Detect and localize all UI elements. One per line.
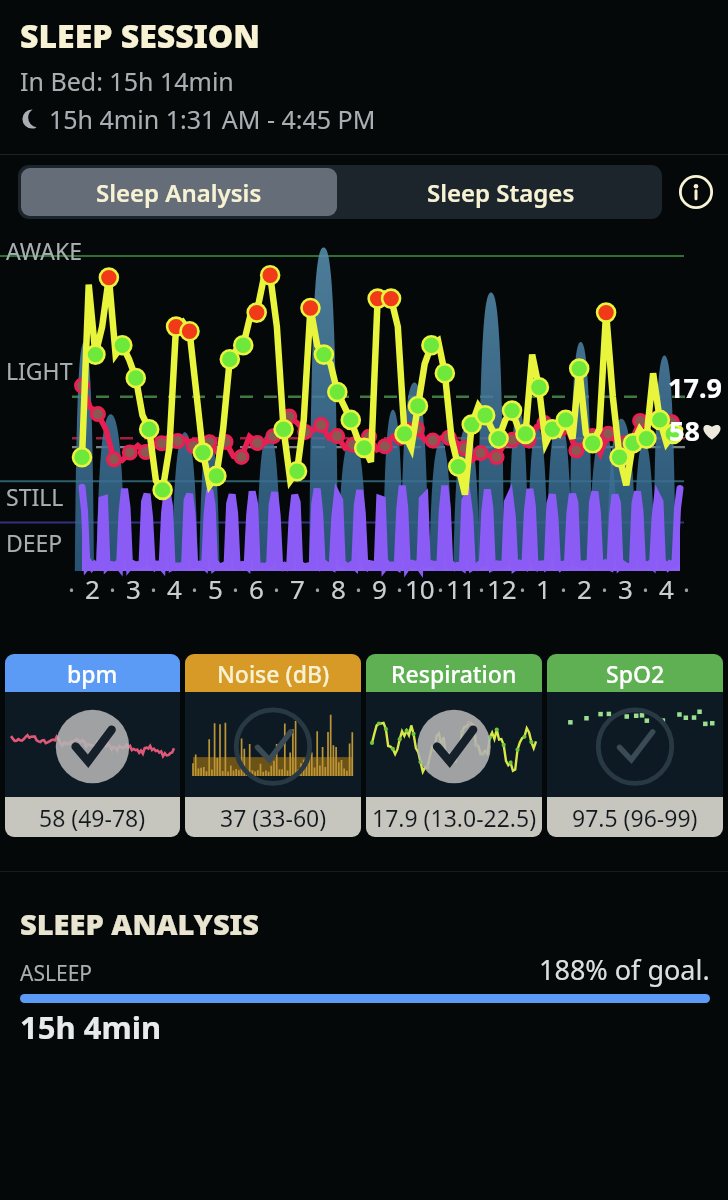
staticText: ·	[150, 571, 157, 606]
staticText: ·	[68, 571, 75, 606]
staticText: 37 (33-60)	[220, 802, 327, 833]
staticText: AWAKE	[6, 235, 82, 266]
staticText: ·	[683, 571, 690, 606]
staticText: SpO2	[606, 658, 665, 689]
staticText: ·	[273, 571, 280, 606]
staticText: In Bed: 15h 14min	[20, 64, 234, 98]
staticText: SLEEP SESSION	[20, 14, 261, 58]
staticText: 11	[446, 571, 476, 606]
staticText: bpm	[67, 658, 118, 689]
staticText: ·	[232, 571, 239, 606]
staticText: ·	[314, 571, 321, 606]
staticText: STILL	[6, 481, 64, 512]
staticText: 2	[577, 571, 592, 606]
staticText: 15h 4min	[20, 1006, 162, 1048]
staticText: 3	[618, 571, 633, 606]
staticText: 4	[167, 571, 182, 606]
staticText: ASLEEP	[20, 959, 93, 988]
staticText: 9	[372, 571, 387, 606]
staticText: 97.5 (96-99)	[572, 802, 698, 833]
staticText: 17.9	[668, 369, 722, 406]
staticText: 6	[249, 571, 264, 606]
staticText: 5	[208, 571, 223, 606]
staticText: 7	[290, 571, 305, 606]
staticText: 2	[85, 571, 100, 606]
staticText: 12	[487, 571, 517, 606]
button[interactable]: Noise (dB)	[185, 654, 361, 837]
staticText: 58 (49-78)	[39, 802, 146, 833]
staticText: ·	[519, 571, 526, 606]
staticText: Respiration	[391, 658, 517, 689]
staticText: 188% of goal.	[539, 951, 710, 988]
staticText: 10	[405, 571, 435, 606]
staticText: ·	[355, 571, 362, 606]
staticText: ·	[109, 571, 116, 606]
staticText: ·	[437, 571, 444, 606]
staticText: ·	[560, 571, 567, 606]
staticText: DEEP	[6, 527, 63, 558]
button[interactable]: bpm	[5, 654, 180, 837]
button[interactable]: SpO2	[547, 654, 723, 837]
staticText: 8	[331, 571, 346, 606]
staticText: 1	[536, 571, 551, 606]
staticText: ·	[478, 571, 485, 606]
staticText: ·	[396, 571, 403, 606]
staticText: 58	[669, 412, 700, 449]
staticText: 17.9 (13.0-22.5)	[372, 802, 537, 833]
button[interactable]: Respiration	[366, 654, 542, 837]
button[interactable]: Sleep Analysis	[21, 168, 337, 216]
staticText: 3	[126, 571, 141, 606]
staticText: SLEEP ANALYSIS	[20, 904, 260, 943]
staticText: 15h 4min 1:31 AM - 4:45 PM	[49, 102, 376, 136]
button[interactable]: Info	[674, 170, 718, 214]
staticText: ·	[191, 571, 198, 606]
staticText: 4	[659, 571, 674, 606]
staticText: ·	[642, 571, 649, 606]
staticText: ·	[601, 571, 608, 606]
staticText: LIGHT	[6, 355, 73, 386]
staticText: Sleep Stages	[427, 176, 575, 209]
button[interactable]: Sleep Stages	[340, 165, 662, 219]
staticText: Noise (dB)	[217, 658, 330, 689]
staticText: Sleep Analysis	[96, 176, 262, 209]
